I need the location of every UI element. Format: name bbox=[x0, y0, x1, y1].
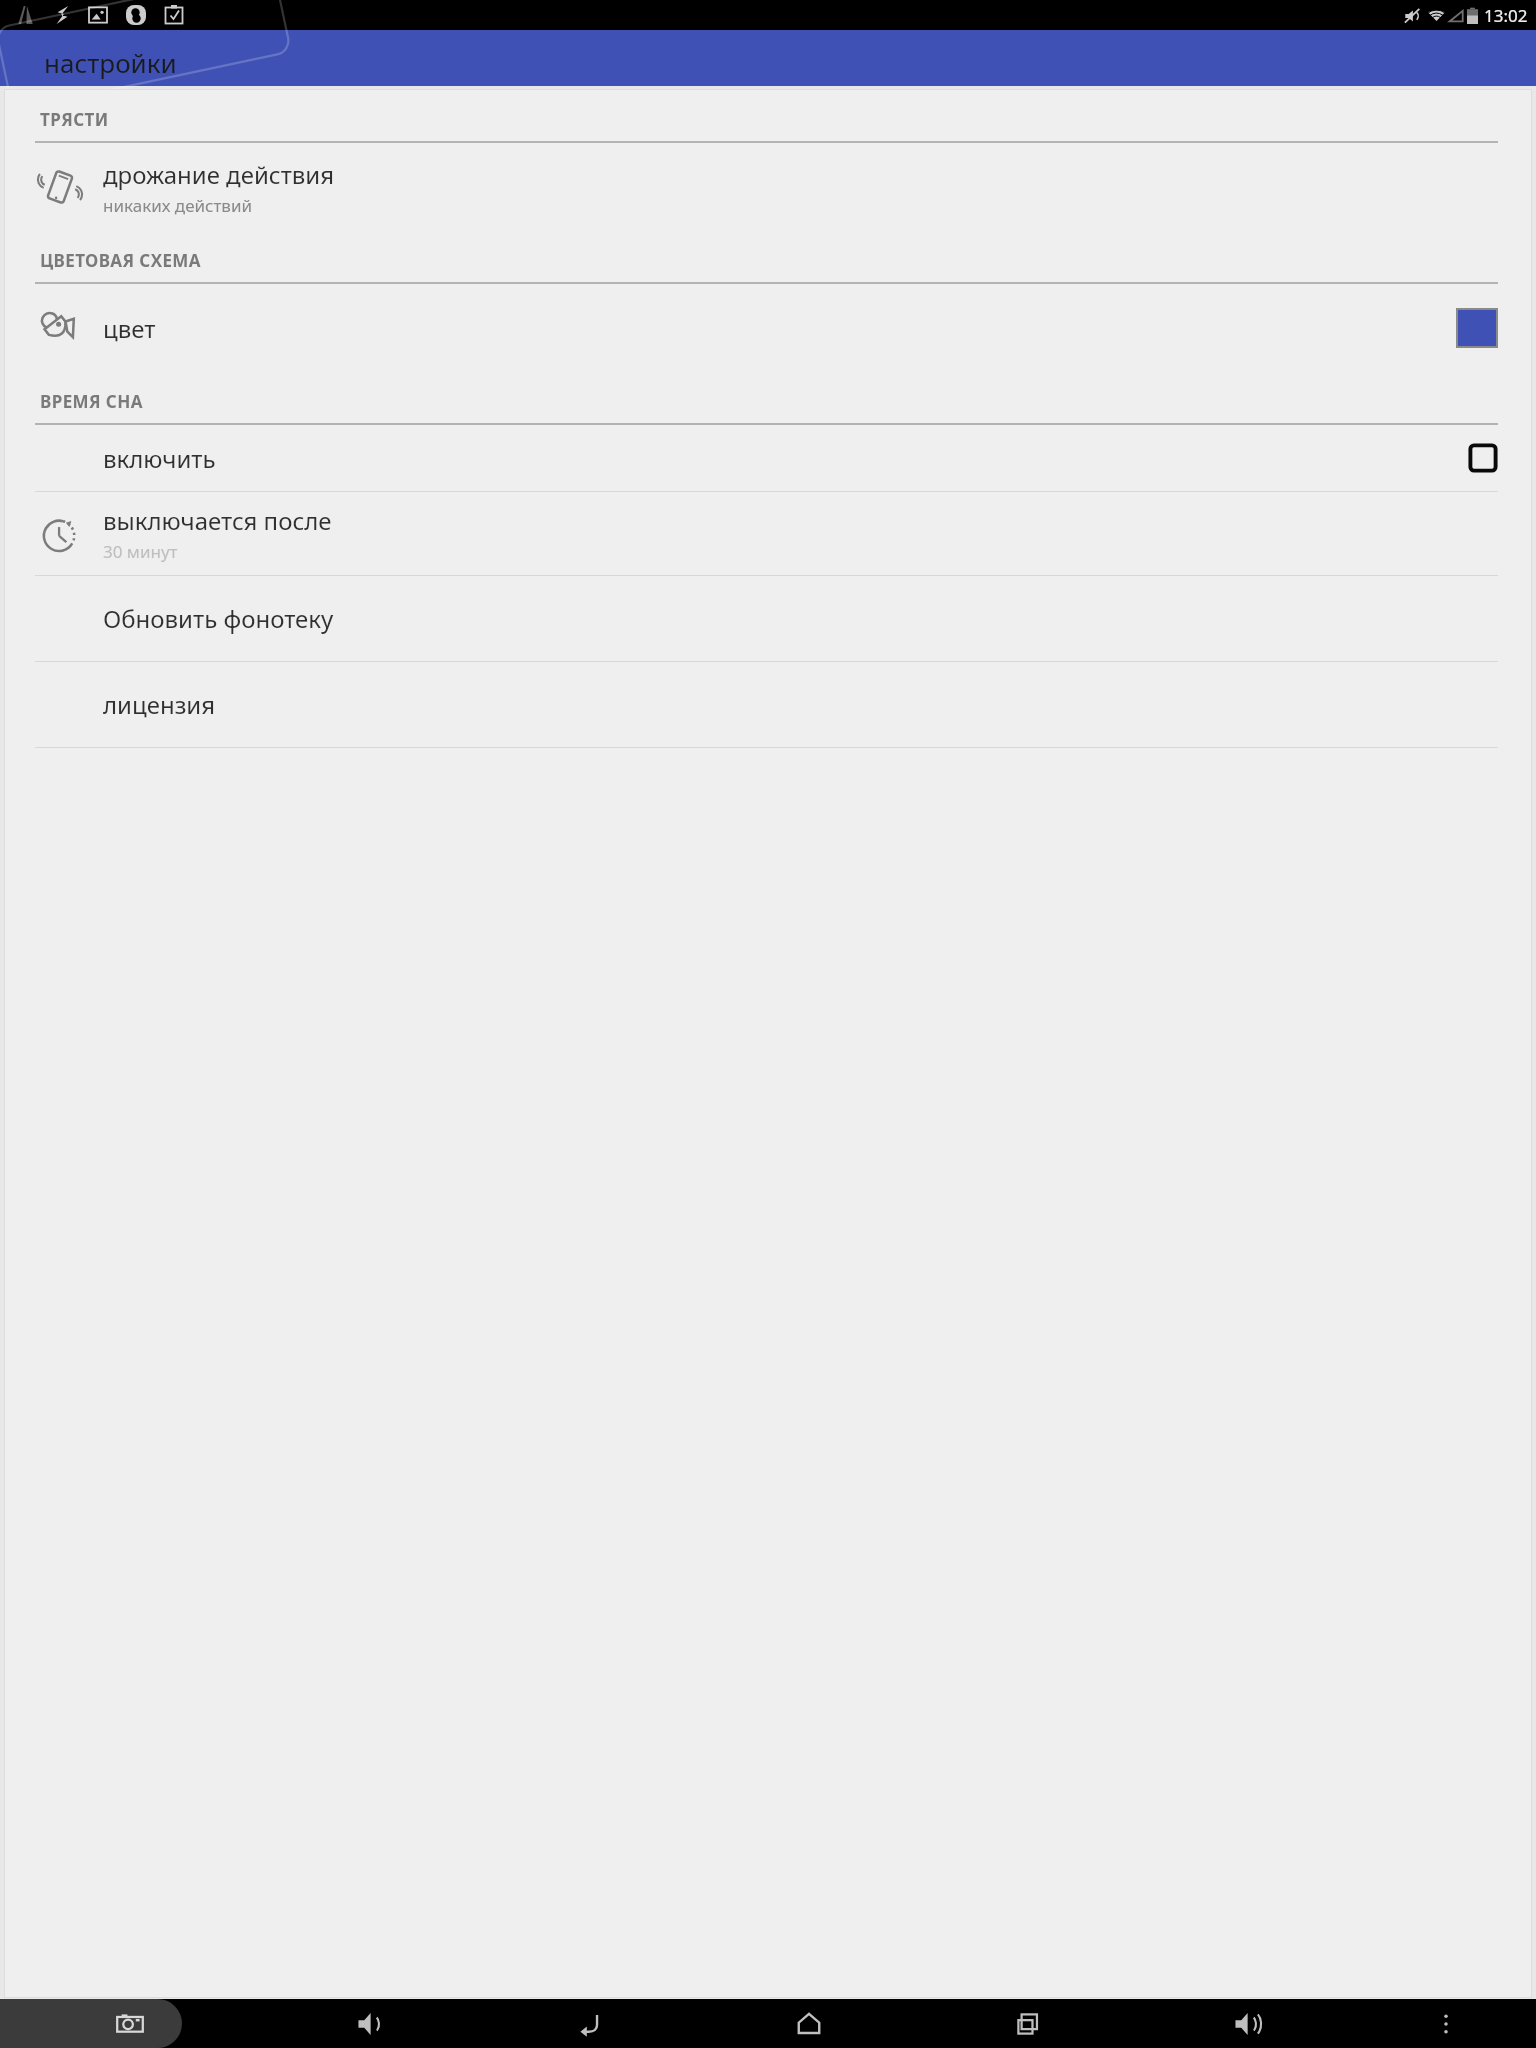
staticText: 30 минут bbox=[103, 540, 178, 563]
button[interactable]: Back bbox=[480, 1999, 699, 2048]
button[interactable]: выключается после bbox=[5, 492, 1531, 575]
button[interactable]: лицензия bbox=[5, 662, 1531, 747]
staticText: цвет bbox=[103, 312, 156, 345]
button[interactable]: Screenshot bbox=[0, 1999, 260, 2048]
button[interactable]: Recents bbox=[918, 1999, 1137, 2048]
staticText: дрожание действия bbox=[103, 158, 335, 191]
staticText: ВРЕМЯ СНА bbox=[40, 390, 143, 413]
button[interactable]: включить bbox=[5, 425, 1531, 491]
staticText: Обновить фонотеку bbox=[103, 602, 334, 635]
staticText: настройки bbox=[44, 45, 177, 80]
staticText: ЦВЕТОВАЯ СХЕМА bbox=[40, 249, 201, 272]
staticText: лицензия bbox=[103, 688, 216, 721]
staticText: ТРЯСТИ bbox=[40, 108, 109, 131]
staticText: включить bbox=[103, 442, 216, 475]
button[interactable]: Volume down bbox=[260, 1999, 480, 2048]
other: включить bbox=[1468, 443, 1498, 473]
staticText: никаких действий bbox=[103, 194, 253, 217]
button[interactable]: дрожание действия bbox=[5, 143, 1531, 231]
button[interactable]: цвет bbox=[5, 284, 1531, 372]
button[interactable]: Обновить фонотеку bbox=[5, 576, 1531, 661]
staticText: 13:02 bbox=[1484, 4, 1528, 27]
button[interactable]: More options bbox=[1356, 1999, 1536, 2048]
button[interactable]: Home bbox=[699, 1999, 918, 2048]
staticText: выключается после bbox=[103, 504, 332, 537]
button[interactable]: Volume up bbox=[1137, 1999, 1356, 2048]
